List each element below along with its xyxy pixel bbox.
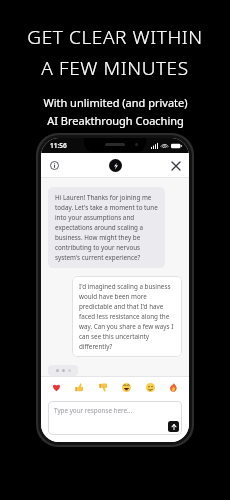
button[interactable]: Thinking face — [143, 380, 158, 395]
button[interactable] — [48, 365, 78, 376]
button[interactable]: Laughing face — [119, 380, 134, 395]
button[interactable]: Thumbs down — [96, 380, 111, 395]
button[interactable]: Information — [46, 157, 63, 174]
staticText: With unlimited (and private) — [43, 95, 188, 110]
button[interactable]: Fire reaction — [166, 380, 181, 395]
button[interactable]: App logo — [109, 159, 122, 172]
button[interactable]: Send — [168, 421, 179, 432]
staticText: 11:56 — [50, 141, 67, 150]
staticText: I'd imagined scaling a business would ha… — [79, 282, 175, 351]
staticText: A FEW MINUTES — [41, 55, 189, 81]
button[interactable]: Thumbs up — [72, 380, 87, 395]
staticText: Type your response here... — [54, 406, 133, 415]
staticText: GET CLEAR WITHIN — [27, 24, 203, 50]
button[interactable]: Close — [167, 157, 184, 174]
button[interactable]: Type your response here... — [48, 401, 182, 435]
button[interactable]: React with heart — [49, 380, 64, 395]
button[interactable]: I'd imagined scaling a business would ha… — [72, 276, 182, 357]
staticText: Hi Lauren! Thanks for joining me today. … — [55, 193, 158, 262]
button[interactable]: Hi Lauren! Thanks for joining me today. … — [48, 187, 165, 268]
staticText: AI Breakthrough Coaching — [47, 113, 184, 128]
